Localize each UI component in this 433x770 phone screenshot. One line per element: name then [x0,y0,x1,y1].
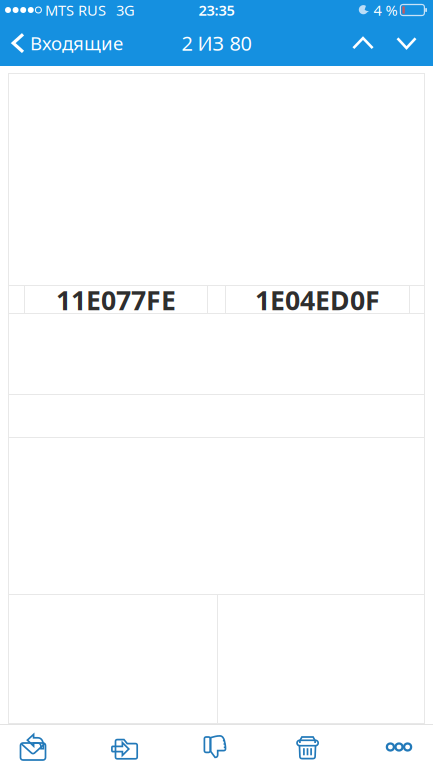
button[interactable]: Next message [385,28,428,57]
staticText: 2 ИЗ 80 [181,30,251,56]
staticText: 1E04ED0F [255,282,380,318]
button[interactable]: Reply [0,724,66,770]
button[interactable]: More [366,724,432,770]
button[interactable]: Mark as junk [183,724,249,770]
button[interactable]: Move to folder [91,724,157,770]
staticText: 23:35 [198,0,234,20]
staticText: 11E077FE [56,282,176,318]
staticText: MTS RUS [45,0,106,20]
staticText: 3G [116,0,135,20]
staticText: 4 % [373,0,397,20]
button[interactable]: Delete [274,724,340,770]
button[interactable]: Входящие [0,24,123,62]
staticText: Входящие [30,31,123,55]
button[interactable]: Previous message [341,28,385,57]
